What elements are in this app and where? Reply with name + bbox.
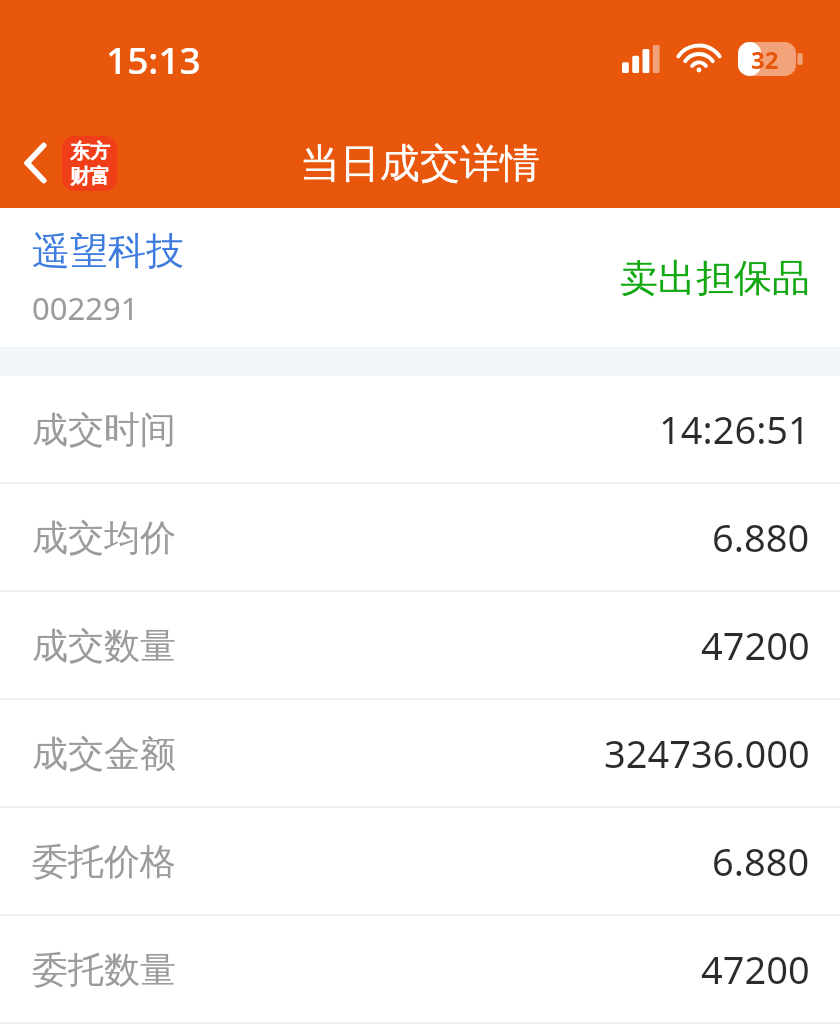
staticText: 47200	[701, 943, 810, 995]
staticText: 成交数量	[32, 623, 176, 668]
button[interactable]: Back	[4, 131, 68, 195]
staticText: 6.880	[712, 511, 810, 563]
staticText: 002291	[32, 287, 139, 329]
staticText: 遥望科技	[32, 227, 184, 275]
staticText: 财富	[70, 164, 110, 189]
staticText: 6.880	[712, 835, 810, 887]
staticText: 卖出担保品	[620, 254, 810, 302]
staticText: 东方	[70, 139, 110, 164]
button[interactable]: 成交时间	[0, 376, 840, 482]
staticText: 15:13	[106, 34, 201, 84]
button[interactable]: 遥望科技	[0, 208, 840, 347]
staticText: 当日成交详情	[300, 138, 540, 188]
button[interactable]: 成交金额	[0, 700, 840, 806]
staticText: 32	[751, 43, 779, 76]
staticText: 14:26:51	[659, 403, 810, 455]
staticText: 47200	[701, 619, 810, 671]
staticText: 成交均价	[32, 515, 176, 560]
button[interactable]: 委托价格	[0, 808, 840, 914]
button[interactable]: 成交均价	[0, 484, 840, 590]
button[interactable]: East Money logo	[62, 136, 117, 191]
button[interactable]: 成交数量	[0, 592, 840, 698]
staticText: 成交时间	[32, 407, 176, 452]
staticText: 324736.000	[604, 727, 810, 779]
staticText: 委托数量	[32, 947, 176, 992]
button[interactable]: 委托数量	[0, 916, 840, 1022]
staticText: 委托价格	[32, 839, 176, 884]
staticText: 成交金额	[32, 731, 176, 776]
